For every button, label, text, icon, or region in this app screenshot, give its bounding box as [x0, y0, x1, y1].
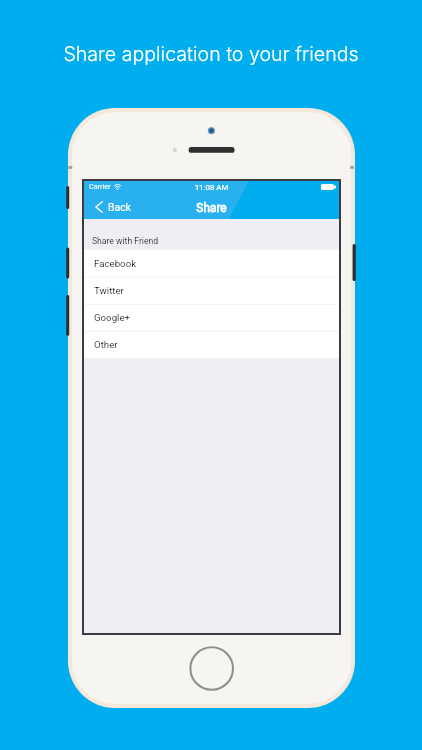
staticText: Google+: [94, 312, 131, 323]
staticText: Share application to your friends: [0, 42, 422, 66]
staticText: Back: [108, 201, 131, 213]
staticText: 11:08 AM: [84, 183, 339, 192]
button[interactable]: Twitter: [84, 277, 339, 304]
staticText: Carrier: [89, 182, 111, 190]
button[interactable]: Back: [84, 199, 139, 215]
button[interactable]: Facebook: [84, 250, 339, 277]
button[interactable]: Google+: [84, 304, 339, 331]
staticText: Facebook: [94, 258, 137, 269]
staticText: Twitter: [94, 285, 124, 296]
button[interactable]: Other: [84, 331, 339, 358]
staticText: Share: [84, 201, 339, 215]
staticText: Share with Friend: [92, 236, 159, 246]
staticText: Other: [94, 339, 118, 350]
